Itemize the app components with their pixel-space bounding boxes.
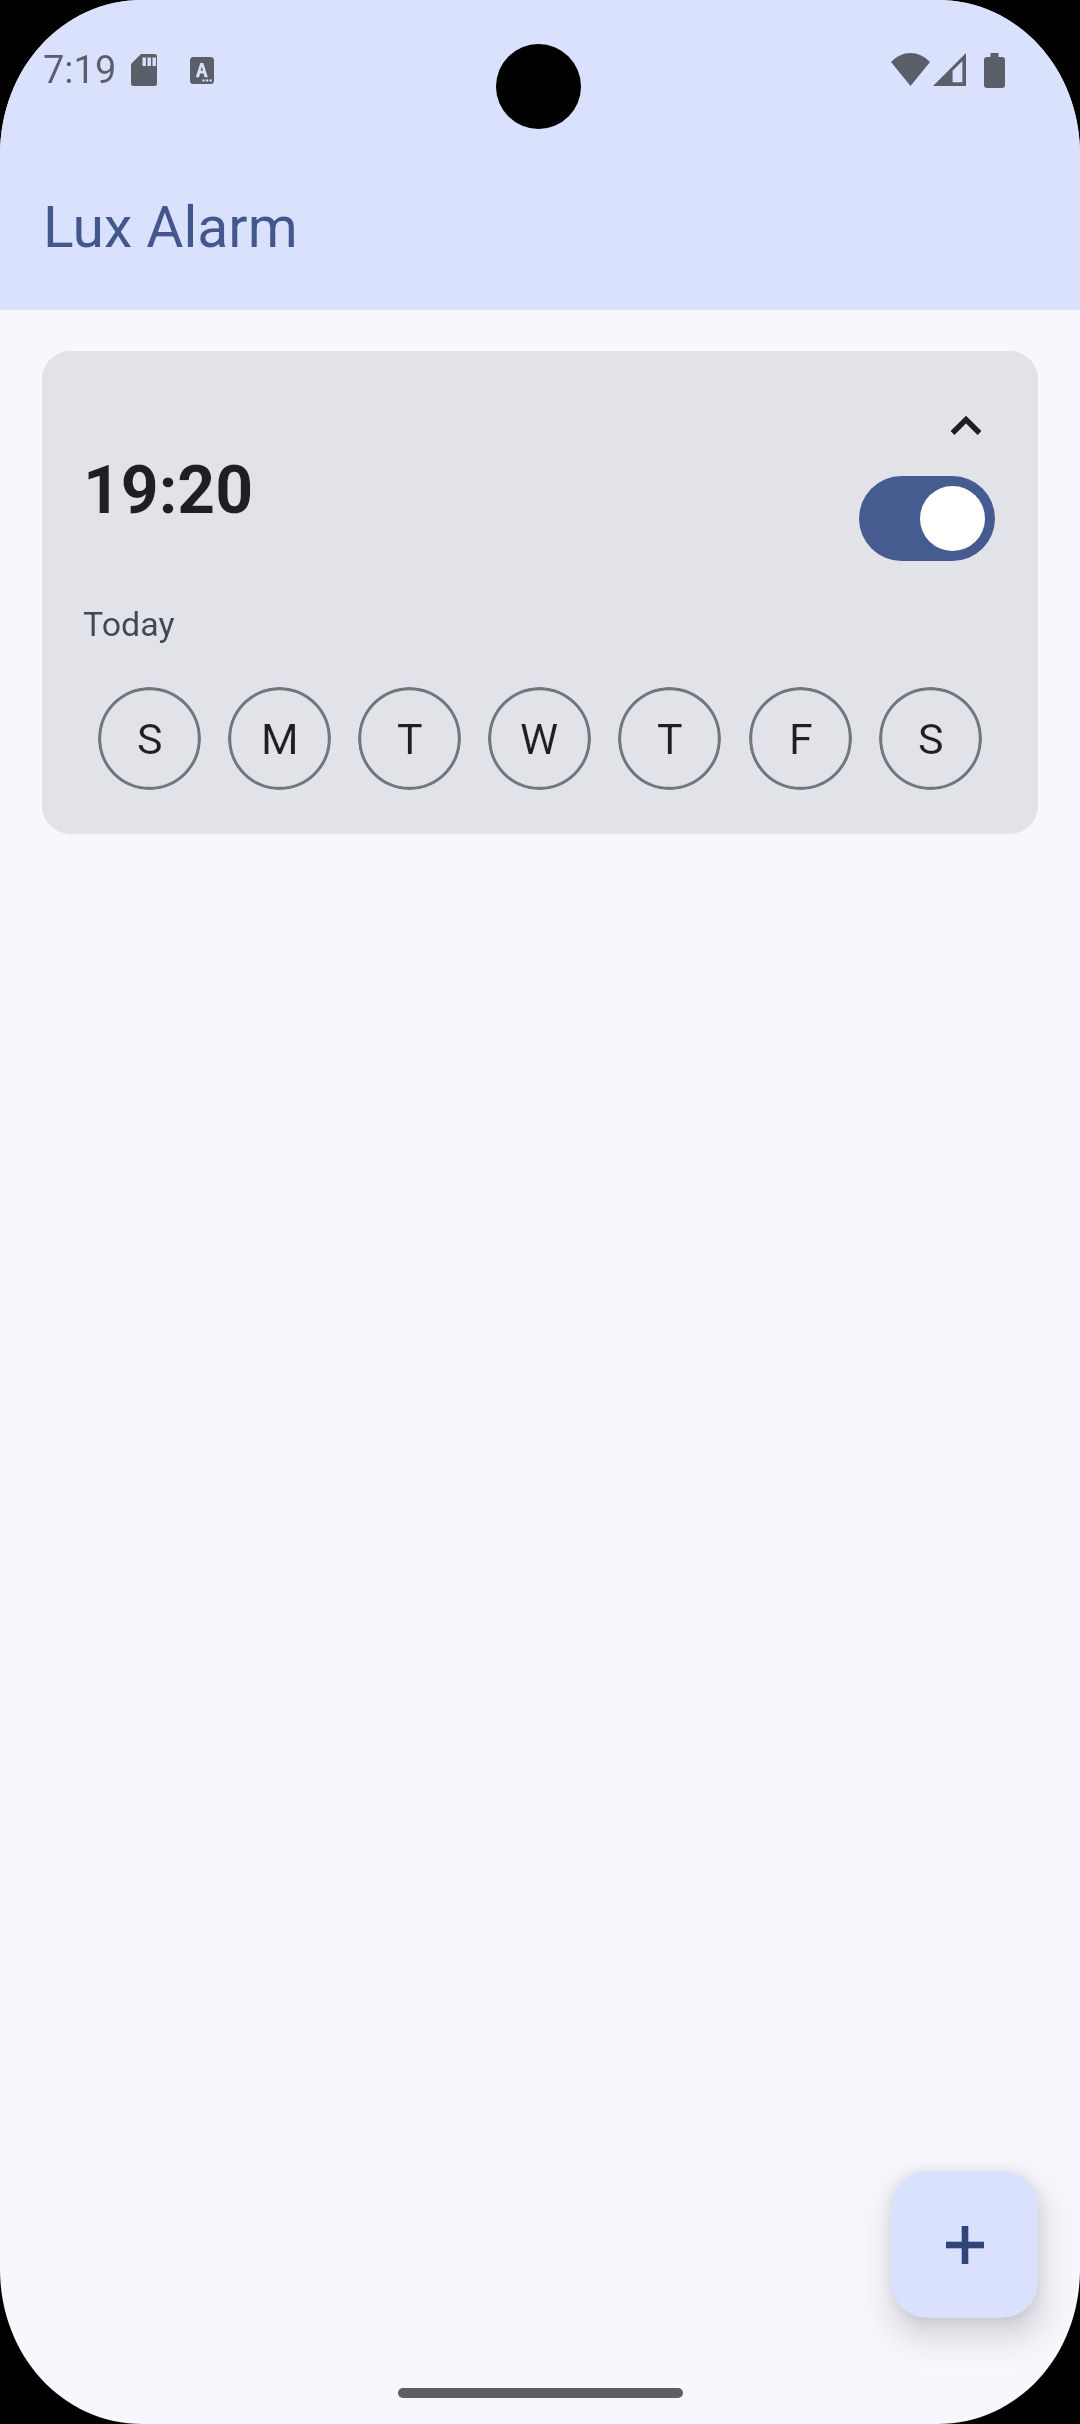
staticText: W (520, 714, 559, 764)
button[interactable]: F (749, 687, 852, 790)
button[interactable]: T (618, 687, 721, 790)
button[interactable]: T (358, 687, 461, 790)
button[interactable]: Add alarm (891, 2171, 1038, 2318)
staticText: 7:19 (43, 48, 117, 93)
button[interactable]: S (879, 687, 982, 790)
button[interactable]: Collapse alarm (918, 378, 1014, 474)
button[interactable]: S (98, 687, 201, 790)
button[interactable]: Alarm enabled (859, 476, 995, 561)
staticText: Today (83, 604, 175, 644)
button[interactable]: M (228, 687, 331, 790)
staticText: M (261, 714, 299, 764)
staticText: 19:20 (83, 452, 254, 529)
staticText: S (137, 714, 163, 764)
staticText: F (789, 714, 813, 764)
staticText: S (918, 714, 944, 764)
staticText: Lux Alarm (43, 194, 298, 261)
staticText: T (397, 714, 423, 764)
staticText: T (657, 714, 683, 764)
button[interactable]: W (488, 687, 591, 790)
